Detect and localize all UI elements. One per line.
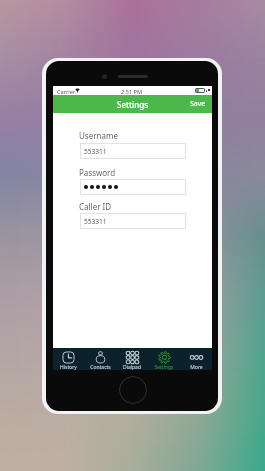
button[interactable]: 553311	[80, 213, 186, 229]
button[interactable]	[80, 179, 186, 195]
button[interactable]: Save	[184, 96, 212, 112]
staticText: 2:51 PM	[121, 88, 143, 96]
button[interactable]: 553311	[80, 143, 186, 159]
staticText: Caller ID	[79, 201, 112, 212]
staticText: Password	[79, 167, 116, 178]
staticText: History	[60, 364, 77, 370]
staticText: 553311	[84, 147, 107, 156]
button[interactable]: More	[180, 348, 212, 370]
staticText: Save	[190, 99, 206, 109]
staticText: More	[190, 364, 203, 370]
button[interactable]: Contacts	[84, 348, 116, 370]
button[interactable]: Settings	[148, 348, 180, 370]
staticText: Carrier	[57, 88, 76, 96]
staticText: Settings	[117, 99, 149, 110]
staticText: Dialpad	[123, 364, 141, 370]
staticText: Contacts	[90, 364, 111, 370]
button[interactable]: History	[53, 348, 84, 370]
button[interactable]: Dialpad	[116, 348, 148, 370]
staticText: 553311	[84, 217, 107, 226]
staticText: Username	[79, 130, 118, 141]
staticText: Settings	[154, 364, 174, 370]
